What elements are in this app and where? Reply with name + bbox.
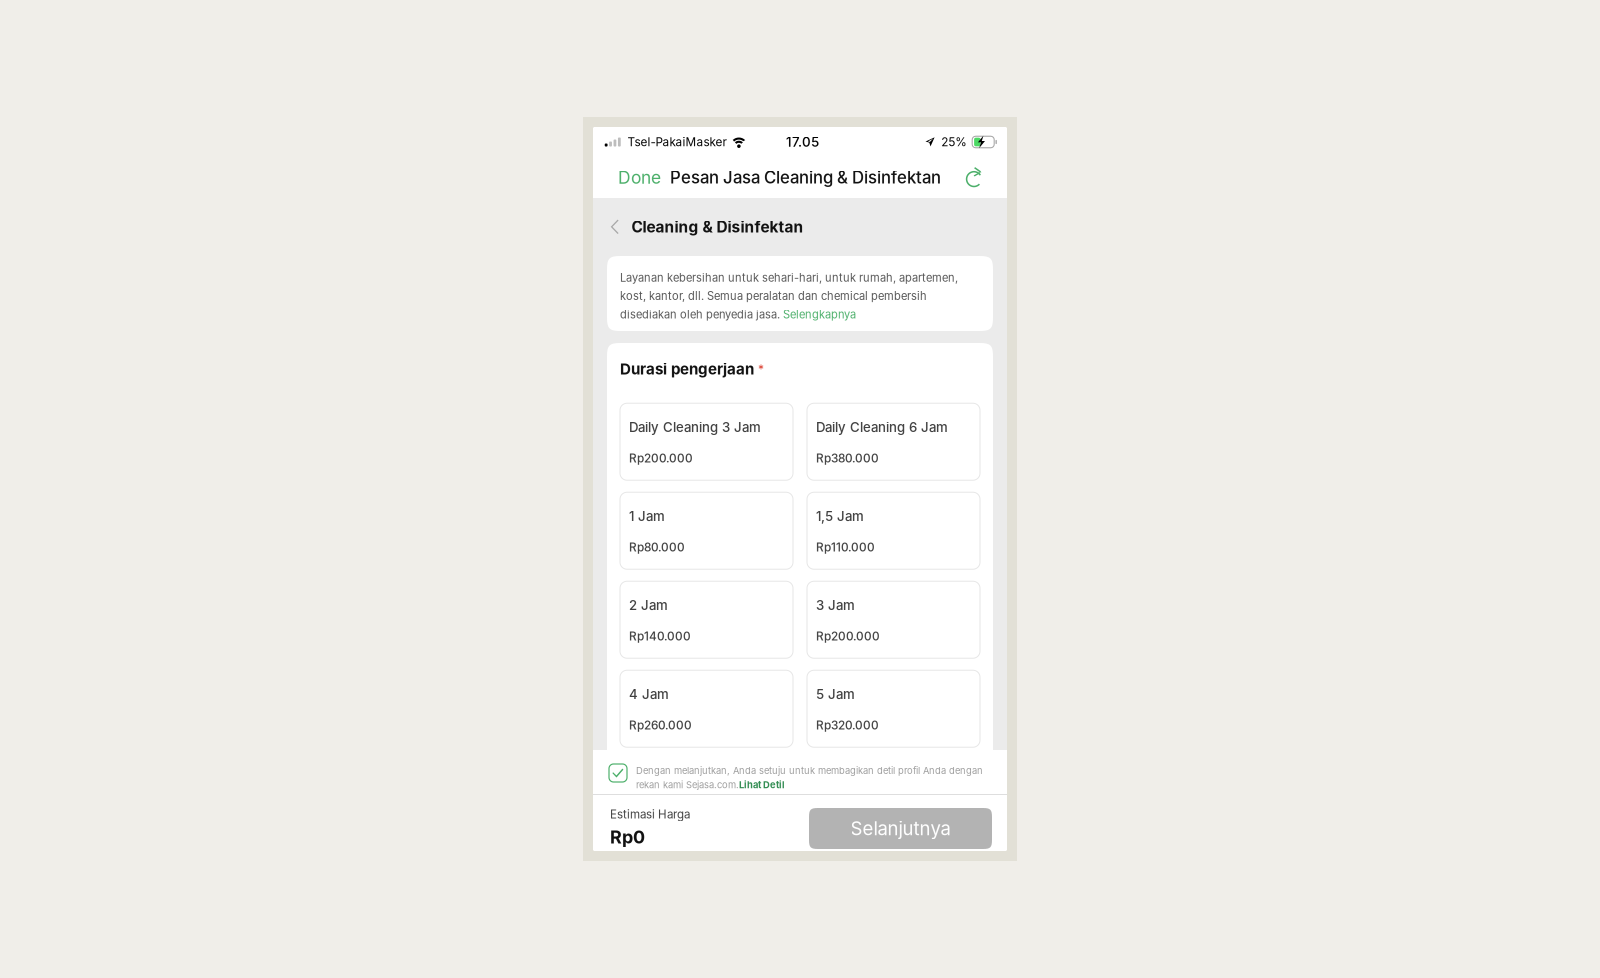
button[interactable]: Back: [606, 211, 623, 243]
staticText: Estimasi Harga: [610, 807, 690, 821]
staticText: Cleaning & Disinfektan: [631, 218, 803, 236]
staticText: Layanan kebersihan untuk sehari-hari, un…: [620, 271, 958, 284]
staticText: 25%: [941, 135, 967, 149]
staticText: Tsel-PakaiMasker: [627, 135, 726, 149]
staticText: 3 Jam: [816, 597, 855, 613]
staticText: *: [758, 362, 764, 376]
staticText: Lihat Detil: [739, 779, 785, 791]
staticText: disediakan oleh penyedia jasa.: [620, 308, 783, 321]
staticText: Daily Cleaning 3 Jam: [629, 419, 761, 435]
button[interactable]: Reload: [963, 164, 987, 190]
staticText: 1 Jam: [629, 508, 665, 524]
staticText: Rp380.000: [816, 451, 879, 465]
staticText: Pesan Jasa Cleaning & Disinfektan: [670, 167, 941, 188]
staticText: 17.05: [786, 134, 819, 150]
staticText: Dengan melanjutkan, Anda setuju untuk me…: [636, 765, 983, 776]
staticText: Rp200.000: [629, 451, 693, 465]
staticText: Durasi pengerjaan: [620, 360, 754, 378]
button[interactable]: 3 Jam: [807, 581, 980, 658]
staticText: Done: [618, 167, 661, 188]
staticText: Rp0: [610, 826, 645, 848]
staticText: Rp110.000: [816, 540, 875, 554]
button[interactable]: 1 Jam: [620, 492, 793, 569]
staticText: Rp260.000: [629, 718, 692, 732]
staticText: Daily Cleaning 6 Jam: [816, 419, 948, 435]
staticText: Selengkapnya: [783, 308, 856, 321]
staticText: Selanjutnya: [850, 817, 950, 840]
staticText: rekan kami Sejasa.com.: [636, 779, 739, 791]
button[interactable]: Agree to share profile: [609, 764, 627, 782]
staticText: 2 Jam: [629, 597, 668, 613]
button[interactable]: Selengkapnya: [783, 308, 856, 321]
button[interactable]: 4 Jam: [620, 670, 793, 747]
staticText: Rp140.000: [629, 629, 691, 643]
staticText: 4 Jam: [629, 686, 669, 702]
button[interactable]: Daily Cleaning 3 Jam: [620, 403, 793, 480]
button[interactable]: 2 Jam: [620, 581, 793, 658]
staticText: 1,5 Jam: [816, 508, 864, 524]
staticText: kost, kantor, dll. Semua peralatan dan c…: [620, 289, 927, 303]
staticText: Rp320.000: [816, 718, 879, 732]
button[interactable]: Lihat Detil: [739, 779, 785, 791]
staticText: Rp80.000: [629, 540, 685, 554]
button[interactable]: 1,5 Jam: [807, 492, 980, 569]
staticText: Rp200.000: [816, 629, 880, 643]
button[interactable]: 5 Jam: [807, 670, 980, 747]
button[interactable]: Daily Cleaning 6 Jam: [807, 403, 980, 480]
staticText: 5 Jam: [816, 686, 855, 702]
button[interactable]: Done: [616, 159, 663, 196]
button[interactable]: Selanjutnya: [809, 795, 992, 849]
